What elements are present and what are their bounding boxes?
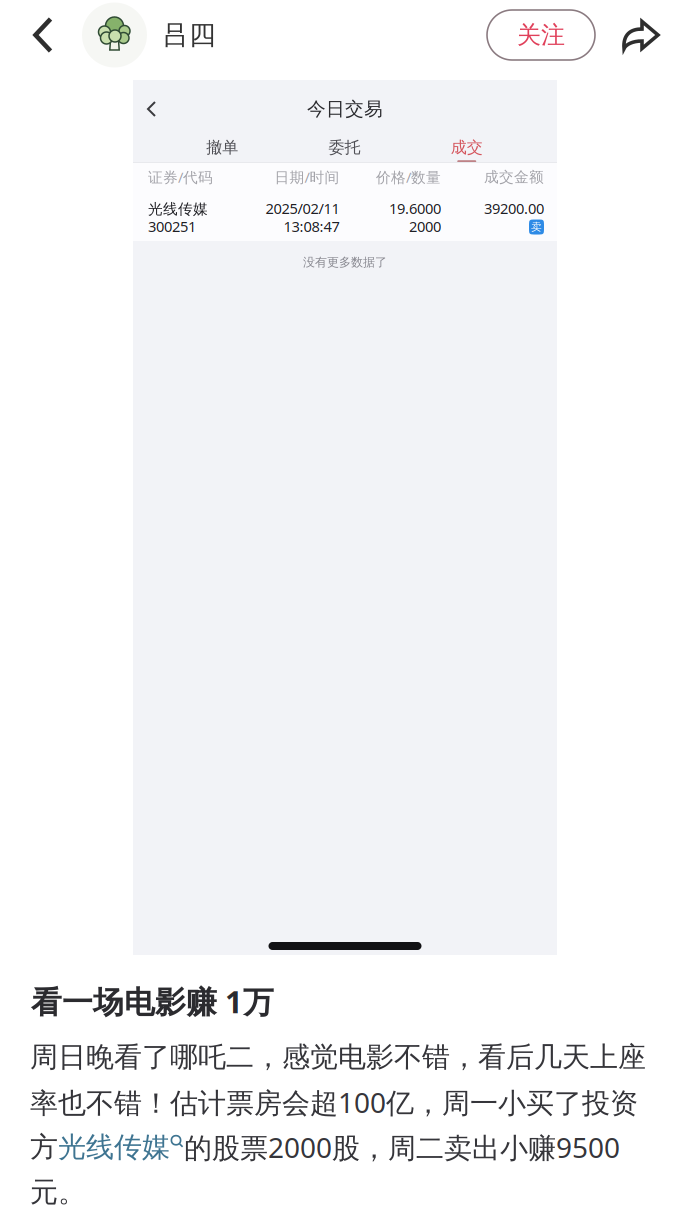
- staticText: 成交金额: [484, 168, 544, 186]
- button[interactable]: Share: [621, 0, 661, 70]
- staticText: 吕四: [162, 19, 216, 51]
- staticText: 日期/时间: [274, 167, 339, 187]
- staticText: 2025/02/11: [265, 198, 339, 218]
- staticText: 19.6000: [389, 198, 441, 218]
- staticText: 的股票2000股，周二卖出小赚9500: [184, 1129, 620, 1166]
- staticText: 委托: [328, 138, 360, 157]
- staticText: 率也不错！估计票房会超100亿，周一小买了投资: [30, 1084, 638, 1121]
- staticText: 价格/数量: [376, 167, 441, 187]
- staticText: 成交: [451, 138, 483, 157]
- button[interactable]: Back: [19, 0, 67, 70]
- staticText: 今日交易: [307, 97, 383, 120]
- staticText: 光线传媒: [148, 200, 208, 218]
- button[interactable]: 吕四: [67, 2, 216, 67]
- staticText: 13:08:47: [283, 216, 339, 236]
- staticText: 看一场电影赚 1万: [31, 981, 274, 1022]
- staticText: 周日晚看了哪吒二，感觉电影不错，看后几天上座: [30, 1040, 646, 1074]
- staticText: 没有更多数据了: [303, 255, 387, 270]
- staticText: 卖: [531, 220, 542, 233]
- staticText: 关注: [517, 20, 565, 50]
- staticText: 2000: [409, 216, 441, 236]
- button[interactable]: 关注: [487, 10, 595, 60]
- staticText: 撤单: [206, 138, 238, 157]
- staticText: 元。: [30, 1175, 86, 1209]
- staticText: 光线传媒: [58, 1130, 170, 1164]
- staticText: 方: [30, 1130, 58, 1164]
- staticText: 证券/代码: [148, 167, 213, 187]
- staticText: 39200.00: [484, 198, 544, 218]
- staticText: 300251: [148, 216, 196, 236]
